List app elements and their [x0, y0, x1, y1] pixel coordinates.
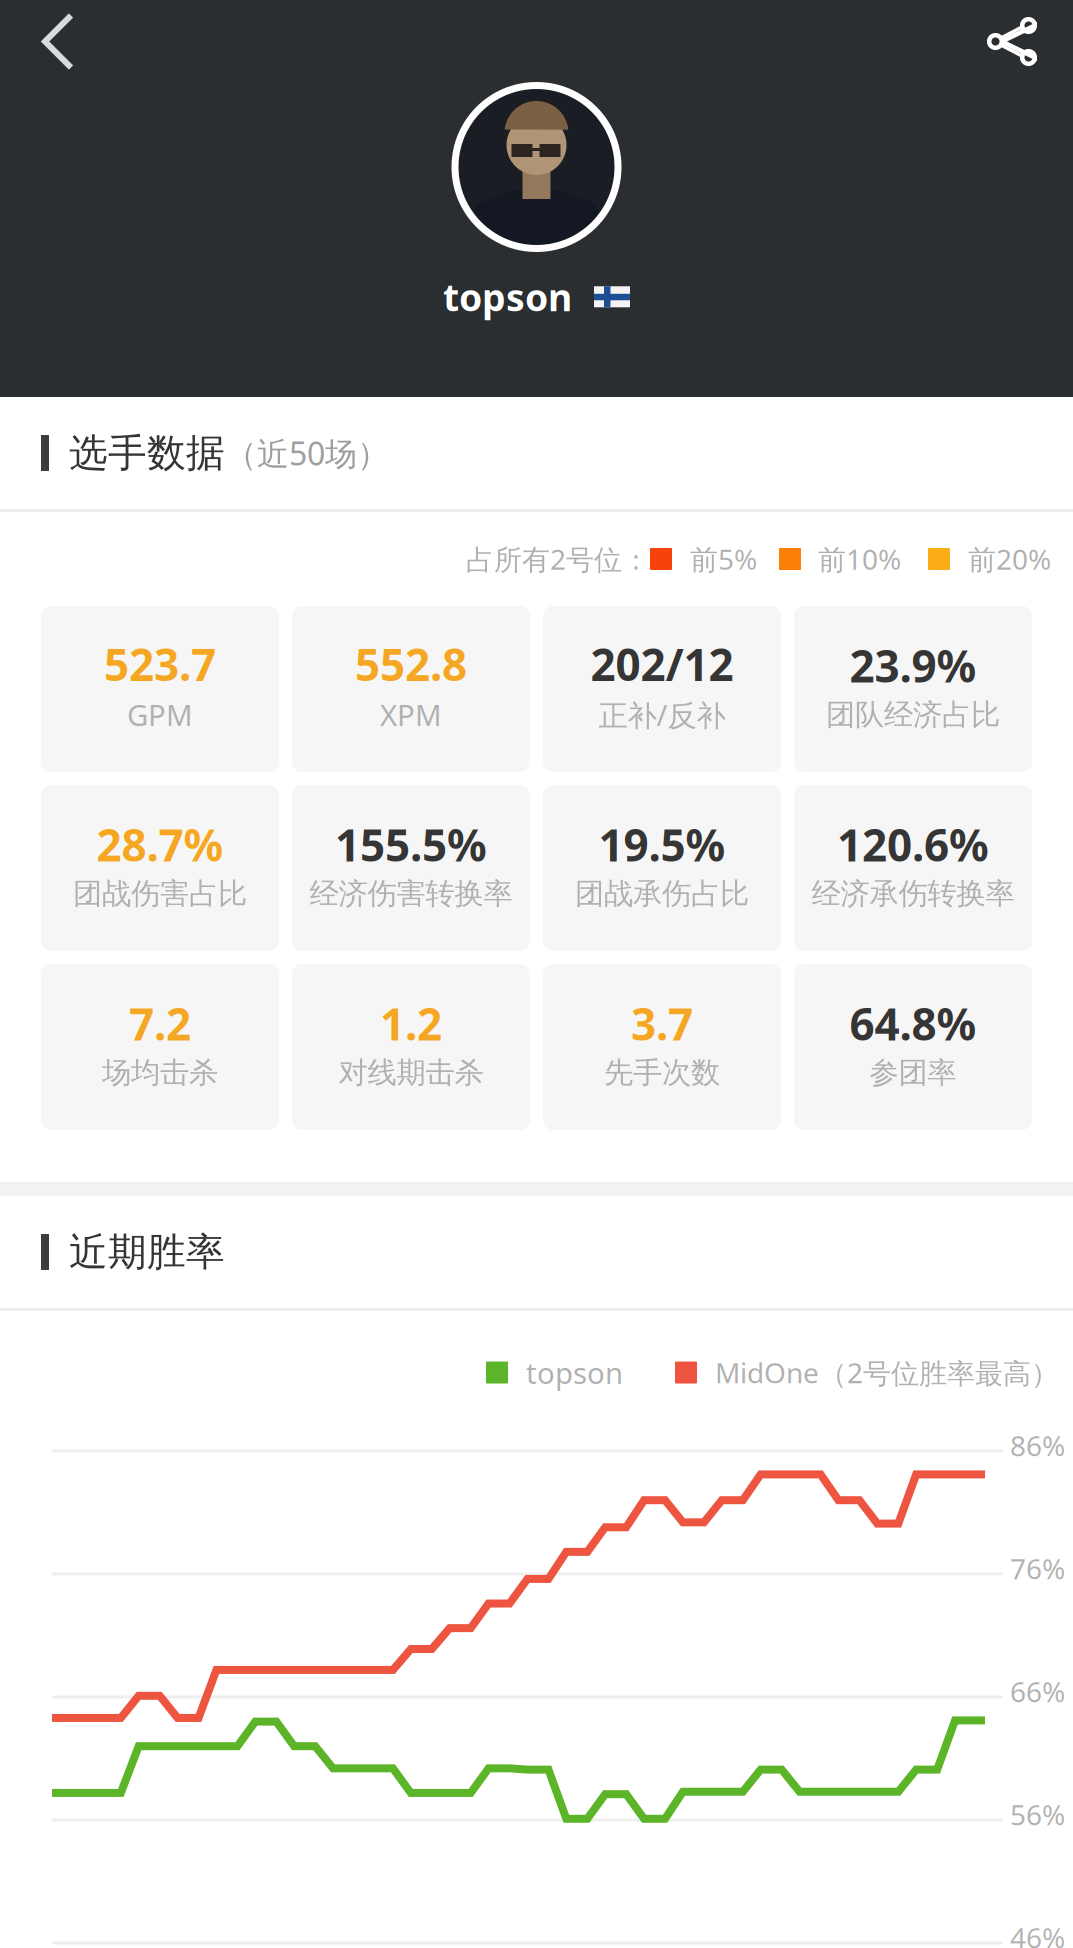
- staticText: 64.8%: [849, 994, 976, 1053]
- staticText: 66%: [1010, 1673, 1065, 1710]
- staticText: GPM: [127, 695, 193, 734]
- staticText: 7.2: [129, 994, 191, 1053]
- staticText: 团战伤害占比: [73, 876, 247, 912]
- staticText: 120.6%: [837, 815, 989, 874]
- staticText: 28.7%: [96, 815, 223, 874]
- staticText: 前10%: [818, 540, 901, 578]
- staticText: 19.5%: [598, 815, 725, 874]
- staticText: 先手次数: [604, 1055, 720, 1091]
- staticText: （近50场）: [225, 432, 389, 474]
- staticText: 对线期击杀: [338, 1055, 483, 1091]
- staticText: 202/12: [590, 635, 733, 693]
- staticText: MidOne（2号位胜率最高）: [715, 1354, 1059, 1391]
- staticText: 团战承伤占比: [575, 876, 749, 912]
- staticText: 76%: [1010, 1550, 1065, 1587]
- staticText: topson: [526, 1353, 623, 1392]
- staticText: 56%: [1010, 1796, 1065, 1833]
- button[interactable]: Share: [963, 9, 1073, 74]
- staticText: 团队经济占比: [826, 697, 1000, 733]
- staticText: 1.2: [380, 994, 442, 1053]
- staticText: 选手数据: [69, 429, 225, 477]
- staticText: 86%: [1010, 1427, 1065, 1464]
- staticText: 占所有2号位：: [466, 540, 650, 578]
- staticText: 正补/反补: [598, 695, 725, 734]
- staticText: XPM: [380, 695, 442, 734]
- staticText: 场均击杀: [102, 1055, 218, 1091]
- staticText: 经济承伤转换率: [811, 876, 1014, 912]
- staticText: 前20%: [968, 540, 1051, 578]
- button[interactable]: Back: [0, 3, 100, 79]
- staticText: topson: [443, 272, 572, 322]
- staticText: 23.9%: [849, 636, 976, 695]
- staticText: 前5%: [690, 540, 757, 578]
- staticText: 552.8: [355, 635, 467, 693]
- staticText: 参团率: [869, 1055, 956, 1091]
- staticText: 523.7: [104, 635, 216, 693]
- staticText: 3.7: [631, 994, 693, 1053]
- staticText: 155.5%: [335, 815, 487, 874]
- staticText: 近期胜率: [69, 1228, 225, 1276]
- staticText: 经济伤害转换率: [309, 876, 512, 912]
- staticText: 46%: [1010, 1919, 1065, 1948]
